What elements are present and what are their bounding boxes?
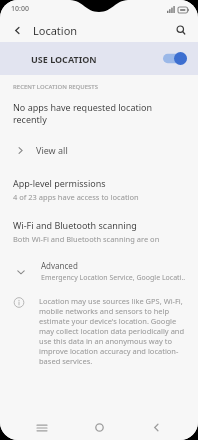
button[interactable]: Search <box>171 20 191 40</box>
button[interactable]: Advanced <box>0 260 198 283</box>
button[interactable]: Back <box>7 20 27 40</box>
staticText: RECENT LOCATION REQUESTS <box>13 83 98 91</box>
staticText: Advanced <box>41 260 78 271</box>
button[interactable]: Home <box>84 415 114 440</box>
staticText: Emergency Location Service, Google Locat… <box>41 273 186 283</box>
staticText: 10:00 <box>11 4 29 14</box>
staticText: Both Wi-Fi and Bluetooth scanning are on <box>13 234 160 244</box>
button[interactable]: No apps have requested location recently <box>0 101 198 125</box>
staticText: App-level permissions <box>13 177 106 189</box>
staticText: View all <box>36 144 68 156</box>
staticText: 4 of 23 apps have access to location <box>13 192 139 202</box>
staticText: Location may use sources like GPS, Wi-Fi… <box>39 296 186 366</box>
button[interactable]: View all <box>0 139 198 161</box>
button[interactable]: Wi-Fi and Bluetooth scanning <box>0 219 198 244</box>
button[interactable]: App-level permissions <box>0 177 198 202</box>
button[interactable]: Recents <box>27 415 57 440</box>
staticText: Wi-Fi and Bluetooth scanning <box>13 219 137 231</box>
button[interactable]: Back <box>141 415 171 440</box>
staticText: USE LOCATION <box>31 53 163 65</box>
staticText: Location <box>33 23 78 38</box>
button[interactable]: USE LOCATION <box>0 42 198 75</box>
staticText: No apps have requested location recently <box>13 101 188 125</box>
